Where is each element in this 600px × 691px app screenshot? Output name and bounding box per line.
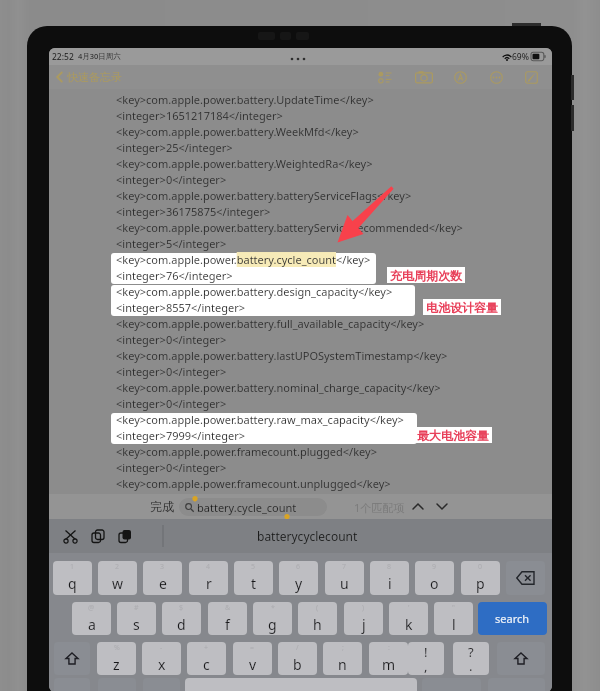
- staticText: l: [452, 615, 456, 634]
- staticText: <integer>5</integer>: [116, 236, 227, 251]
- staticText: #: [134, 603, 139, 613]
- staticText: s: [133, 615, 140, 634]
- staticText: =: [250, 643, 255, 653]
- staticText: <integer>0</integer>: [116, 460, 227, 475]
- staticText: ): [362, 603, 365, 613]
- staticText: <key>com.apple.power.battery.WeekMfd</ke…: [116, 124, 359, 139]
- staticText: h: [313, 615, 322, 634]
- staticText: z: [113, 655, 120, 674]
- button[interactable]: 完成: [150, 499, 174, 514]
- button[interactable]: Checklist: [370, 65, 400, 89]
- button[interactable]: /: [278, 642, 317, 675]
- button[interactable]: 4: [189, 561, 228, 595]
- button[interactable]: &: [208, 602, 247, 635]
- button[interactable]: Backspace: [506, 561, 545, 595]
- button[interactable]: 6: [279, 561, 318, 595]
- button[interactable]: 2: [98, 561, 137, 595]
- button[interactable]: Next match: [432, 496, 452, 516]
- button[interactable]: ?: [453, 642, 489, 675]
- button[interactable]: 9: [415, 561, 454, 595]
- staticText: o: [430, 574, 439, 593]
- staticText: 5: [251, 562, 256, 572]
- staticText: c: [203, 655, 210, 674]
- button[interactable]: ": [434, 602, 473, 635]
- button[interactable]: Shift: [54, 642, 90, 675]
- staticText: %: [114, 643, 120, 653]
- button[interactable]: $: [162, 602, 201, 635]
- staticText: <key>com.apple.power.battery.lastUPOSyst…: [116, 348, 448, 363]
- button[interactable]: 5: [234, 561, 273, 595]
- button[interactable]: battery.cycle_count: [179, 498, 327, 516]
- button[interactable]: 7: [325, 561, 364, 595]
- staticText: *: [271, 603, 275, 613]
- button[interactable]: %: [97, 642, 136, 675]
- button[interactable]: ): [344, 602, 383, 635]
- staticText: m: [382, 655, 396, 674]
- staticText: 4月30日周六: [78, 51, 121, 61]
- staticText: ': [408, 603, 410, 613]
- staticText: .: [469, 657, 473, 675]
- staticText: <integer>0</integer>: [116, 172, 227, 187]
- button[interactable]: ': [389, 602, 428, 635]
- button[interactable]: More: [481, 65, 511, 89]
- button[interactable]: *: [253, 602, 292, 635]
- staticText: <integer>1651217184</integer>: [116, 108, 283, 123]
- staticText: /: [296, 643, 299, 653]
- button[interactable]: 1: [53, 561, 92, 595]
- staticText: y: [295, 574, 303, 593]
- staticText: <key>com.apple.power.battery.raw_max_cap…: [116, 412, 404, 427]
- staticText: <key>com.apple.power.framecount.unplugge…: [116, 476, 391, 491]
- button[interactable]: #: [117, 602, 156, 635]
- button[interactable]: search: [478, 602, 547, 635]
- button[interactable]: (: [298, 602, 337, 635]
- staticText: v: [249, 655, 257, 674]
- staticText: <key>com.apple.power.battery.full_availa…: [116, 316, 425, 331]
- button[interactable]: Shift: [497, 642, 545, 675]
- button[interactable]: =: [233, 642, 272, 675]
- staticText: u: [340, 574, 349, 593]
- button[interactable]: Paste: [116, 528, 134, 544]
- staticText: k: [405, 615, 413, 634]
- staticText: 1: [70, 562, 75, 572]
- button[interactable]: 8: [370, 561, 409, 595]
- staticText: <key>com.apple.power.battery.cycle_count…: [116, 252, 371, 267]
- button[interactable]: -: [142, 642, 181, 675]
- staticText: r: [206, 574, 212, 593]
- button[interactable]: Compose: [516, 65, 546, 89]
- staticText: e: [159, 574, 167, 593]
- button[interactable]: Markup: [445, 65, 475, 89]
- staticText: search: [495, 611, 530, 626]
- button[interactable]: 快速备忘录: [53, 68, 125, 86]
- button[interactable]: :: [369, 642, 408, 675]
- staticText: 7: [342, 562, 347, 572]
- button[interactable]: @: [72, 602, 111, 635]
- button[interactable]: 3: [143, 561, 182, 595]
- button[interactable]: Previous match: [408, 496, 428, 516]
- button[interactable]: ;: [323, 642, 362, 675]
- staticText: w: [112, 574, 124, 593]
- staticText: <key>com.apple.power.battery.design_capa…: [116, 284, 393, 299]
- staticText: q: [68, 574, 77, 593]
- staticText: g: [268, 615, 277, 634]
- staticText: <integer>0</integer>: [116, 332, 227, 347]
- staticText: <integer>0</integer>: [116, 364, 227, 379]
- staticText: 0: [478, 562, 483, 572]
- button[interactable]: +: [187, 642, 226, 675]
- staticText: :: [388, 643, 390, 653]
- button[interactable]: Cut: [61, 528, 79, 544]
- staticText: <integer>0</integer>: [116, 396, 227, 411]
- staticText: battery.cycle_count: [197, 500, 297, 515]
- button[interactable]: 0: [461, 561, 500, 595]
- staticText: 充电周期次数: [390, 268, 462, 283]
- button[interactable]: !: [408, 642, 444, 675]
- button[interactable]: Copy: [89, 528, 107, 544]
- staticText: <integer>76</integer>: [116, 268, 233, 283]
- button[interactable]: Camera: [409, 65, 439, 89]
- staticText: 完成: [150, 499, 174, 514]
